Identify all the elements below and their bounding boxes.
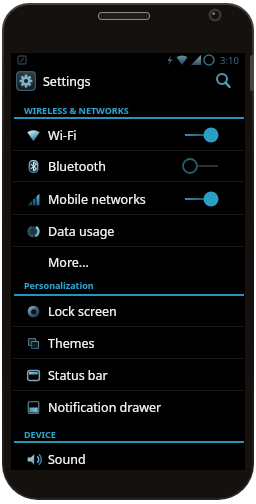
- button[interactable]: Mobile networks: [11, 183, 245, 215]
- staticText: Data usage: [48, 223, 115, 240]
- staticText: Mobile networks: [48, 191, 146, 208]
- staticText: Status bar: [48, 367, 108, 384]
- button[interactable]: Wi-Fi: [11, 119, 245, 151]
- staticText: WIRELESS & NETWORKS: [24, 104, 129, 116]
- button[interactable]: Themes: [11, 327, 245, 359]
- staticText: Lock screen: [48, 303, 117, 320]
- staticText: Sound: [48, 451, 86, 468]
- staticText: Wi-Fi: [48, 127, 77, 144]
- button[interactable]: Sound: [11, 443, 245, 475]
- staticText: Themes: [48, 335, 95, 352]
- button[interactable]: [211, 67, 245, 95]
- staticText: DEVICE: [24, 428, 56, 440]
- staticText: 3:10: [220, 54, 239, 67]
- button[interactable]: More...: [11, 246, 245, 278]
- button[interactable]: Notification drawer: [11, 391, 245, 423]
- staticText: Settings: [43, 73, 91, 90]
- staticText: Personalization: [24, 279, 94, 291]
- button[interactable]: Lock screen: [11, 295, 245, 327]
- button[interactable]: Bluetooth: [11, 150, 245, 182]
- staticText: Bluetooth: [48, 158, 107, 175]
- button[interactable]: Status bar: [11, 359, 245, 391]
- staticText: Notification drawer: [48, 399, 162, 416]
- staticText: More...: [48, 254, 89, 271]
- button[interactable]: Data usage: [11, 215, 245, 247]
